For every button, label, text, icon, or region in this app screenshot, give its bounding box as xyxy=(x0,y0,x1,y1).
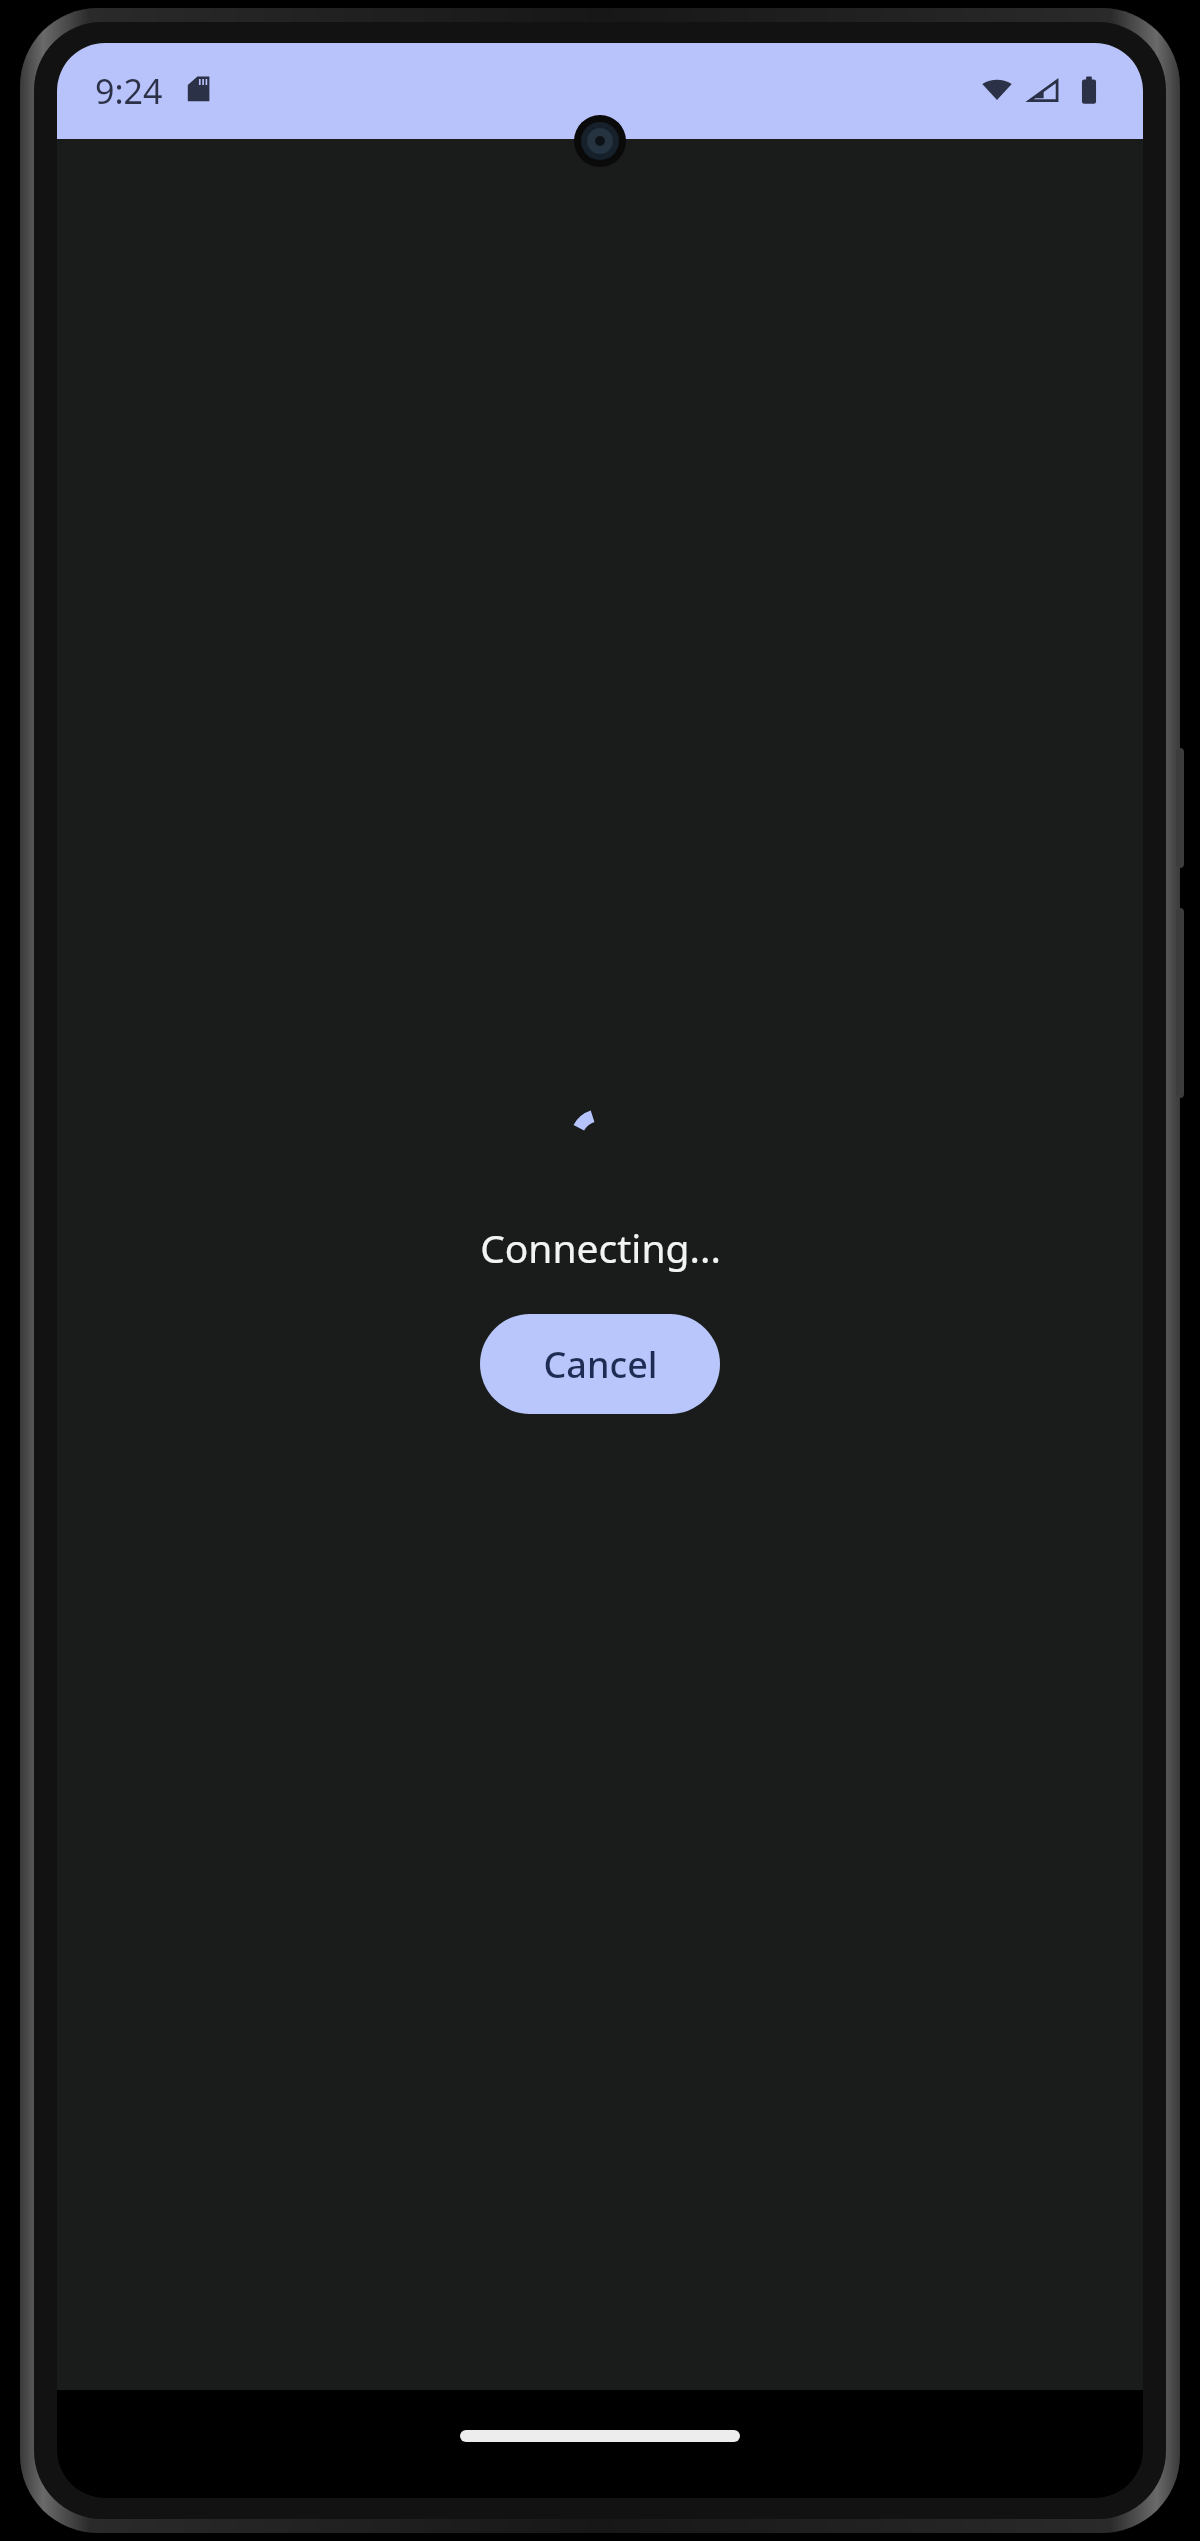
staticText: 9:24 xyxy=(95,68,163,114)
staticText: Connecting... xyxy=(480,1221,721,1274)
button[interactable]: Cancel xyxy=(480,1314,720,1414)
other: Home gesture bar xyxy=(460,2430,740,2442)
staticText: Cancel xyxy=(543,1340,658,1389)
